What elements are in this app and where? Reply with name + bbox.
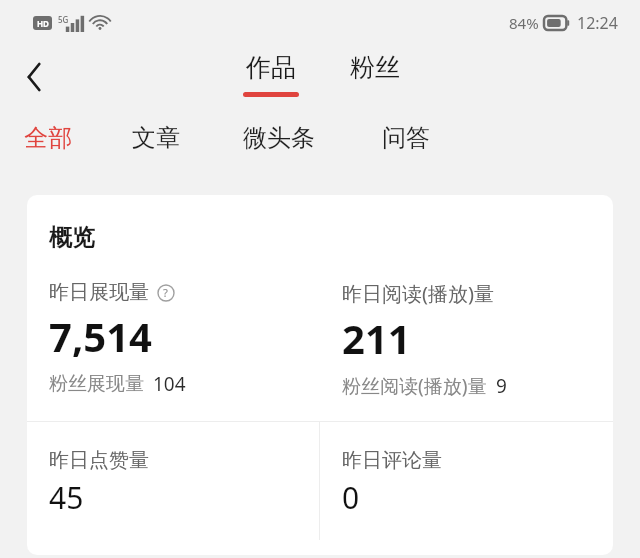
staticText: 粉丝: [350, 52, 400, 83]
staticText: 84%: [509, 13, 539, 33]
button[interactable]: 粉丝: [330, 46, 420, 108]
button[interactable]: 问答: [382, 108, 430, 168]
staticText: 45: [49, 477, 84, 518]
staticText: 0: [342, 477, 360, 518]
staticText: ?: [163, 285, 168, 300]
staticText: 211: [342, 311, 411, 365]
staticText: 问答: [382, 123, 430, 153]
button[interactable]: Back: [10, 53, 58, 101]
staticText: HD: [37, 18, 49, 29]
staticText: 104: [153, 371, 186, 397]
button[interactable]: Help: [156, 283, 175, 302]
staticText: 全部: [24, 123, 72, 153]
staticText: 概览: [49, 223, 95, 252]
button[interactable]: 概览: [27, 195, 613, 555]
button[interactable]: 全部: [24, 108, 72, 168]
staticText: 文章: [132, 123, 180, 153]
staticText: 昨日评论量: [342, 448, 442, 473]
staticText: 昨日点赞量: [49, 448, 149, 473]
staticText: 12:24: [577, 12, 618, 34]
staticText: 9: [496, 373, 507, 399]
staticText: 粉丝展现量: [49, 372, 144, 396]
button[interactable]: 微头条: [243, 108, 315, 168]
staticText: 昨日展现量: [49, 280, 149, 305]
staticText: 7,514: [49, 309, 152, 363]
staticText: 5G: [58, 14, 69, 25]
staticText: 微头条: [243, 123, 315, 153]
button[interactable]: 文章: [132, 108, 180, 168]
staticText: 昨日阅读(播放)量: [342, 280, 494, 307]
staticText: 作品: [246, 52, 296, 83]
staticText: 粉丝阅读(播放)量: [342, 373, 487, 399]
button[interactable]: 作品: [226, 46, 316, 108]
